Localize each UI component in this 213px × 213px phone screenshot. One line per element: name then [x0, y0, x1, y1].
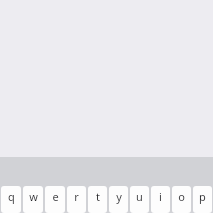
button[interactable]: t [88, 186, 107, 213]
staticText: u [136, 189, 143, 204]
staticText: p [199, 189, 206, 204]
staticText: e [52, 189, 59, 204]
staticText: t [96, 189, 100, 204]
button[interactable]: w [23, 186, 43, 213]
button[interactable]: y [109, 186, 128, 213]
staticText: r [74, 189, 79, 204]
button[interactable]: r [67, 186, 86, 213]
staticText: i [159, 189, 162, 204]
button[interactable]: u [130, 186, 149, 213]
button[interactable]: i [151, 186, 170, 213]
staticText: y [116, 189, 122, 204]
button[interactable]: o [172, 186, 191, 213]
staticText: o [178, 189, 185, 204]
staticText: w [29, 189, 38, 204]
button[interactable]: q [1, 186, 21, 213]
button[interactable]: p [193, 186, 212, 213]
staticText: q [8, 189, 15, 204]
button[interactable]: e [45, 186, 65, 213]
